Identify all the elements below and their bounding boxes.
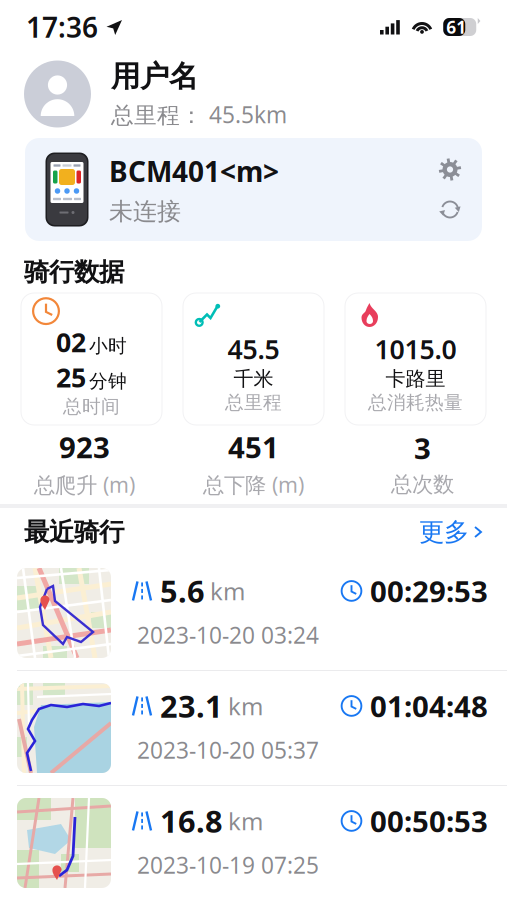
- staticText: 45.5: [227, 331, 279, 366]
- button[interactable]: 设备设置: [438, 157, 462, 181]
- staticText: 卡路里: [385, 366, 445, 391]
- staticText: 最近骑行: [24, 516, 124, 547]
- staticText: 总时间: [63, 395, 120, 418]
- staticText: 用户名: [111, 58, 198, 94]
- staticText: 2023-10-19 07:25: [137, 850, 319, 880]
- staticText: 总里程： 45.5km: [111, 99, 287, 130]
- staticText: km: [210, 575, 245, 607]
- staticText: 5.6: [160, 571, 205, 611]
- button[interactable]: 23.1: [0, 671, 507, 786]
- staticText: 千米: [233, 366, 273, 391]
- staticText: 总下降 (m): [203, 470, 304, 499]
- button[interactable]: 更多: [419, 516, 483, 547]
- staticText: km: [228, 805, 263, 837]
- staticText: 总消耗热量: [368, 391, 463, 414]
- staticText: 2023-10-20 03:24: [137, 620, 319, 650]
- staticText: 骑行数据: [24, 256, 124, 287]
- staticText: 451: [228, 427, 279, 466]
- staticText: 00:29:53: [370, 571, 488, 610]
- staticText: 2023-10-20 05:37: [137, 735, 319, 765]
- staticText: 小时: [89, 334, 127, 357]
- button[interactable]: BCM401<m>: [25, 138, 482, 241]
- staticText: 00:50:53: [370, 801, 488, 840]
- button[interactable]: 16.8: [0, 786, 507, 900]
- staticText: BCM401<m>: [109, 153, 279, 190]
- staticText: 3: [414, 428, 431, 467]
- staticText: 02: [56, 324, 86, 359]
- staticText: 01:04:48: [370, 686, 488, 725]
- staticText: 未连接: [109, 197, 181, 226]
- staticText: 更多: [419, 516, 469, 547]
- staticText: 23.1: [160, 686, 223, 726]
- staticText: km: [228, 690, 263, 722]
- staticText: 总爬升 (m): [34, 470, 135, 499]
- staticText: 923: [59, 427, 110, 466]
- staticText: 25: [56, 359, 86, 395]
- button[interactable]: 用户名: [0, 54, 507, 134]
- staticText: 总次数: [391, 471, 454, 498]
- button[interactable]: 重新连接: [438, 197, 462, 221]
- staticText: 分钟: [89, 370, 127, 393]
- button[interactable]: 5.6: [0, 556, 507, 671]
- staticText: 17:36: [26, 8, 98, 46]
- staticText: 总里程: [225, 391, 282, 414]
- staticText: 61: [446, 15, 466, 38]
- staticText: 16.8: [160, 801, 223, 841]
- staticText: 1015.0: [374, 331, 456, 366]
